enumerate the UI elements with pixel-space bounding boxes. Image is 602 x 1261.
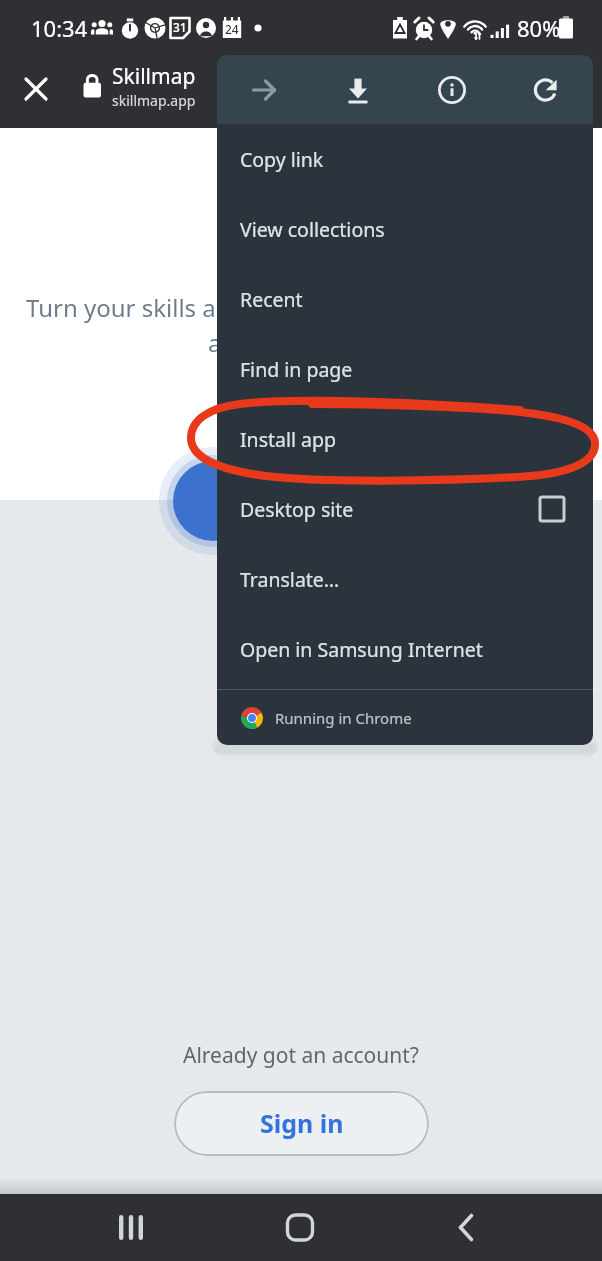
staticText: View collections	[240, 216, 385, 243]
button[interactable]: Install app	[217, 404, 593, 474]
staticText: Translate…	[240, 566, 340, 593]
button[interactable]: Translate…	[217, 544, 593, 614]
button[interactable]: Page info	[405, 55, 499, 124]
button[interactable]: Copy link	[217, 124, 593, 194]
staticText: Open in Samsung Internet	[240, 636, 483, 663]
button[interactable]: View collections	[217, 194, 593, 264]
staticText: a map	[208, 326, 408, 359]
button[interactable]: Reload	[499, 55, 593, 124]
button[interactable]: Home	[266, 1194, 334, 1261]
staticText: Sign in	[260, 1106, 344, 1140]
staticText: Turn your skills and interests	[26, 291, 586, 324]
button[interactable]: Sign in	[174, 1091, 429, 1156]
button[interactable]: Running in Chrome	[217, 690, 593, 745]
button[interactable]: Recent	[217, 264, 593, 334]
staticText: Skillmap	[112, 62, 196, 91]
button[interactable]: Forward	[217, 55, 311, 124]
button[interactable]: Close	[14, 67, 58, 111]
button[interactable]: Download	[311, 55, 405, 124]
staticText: Copy link	[240, 146, 324, 173]
button[interactable]: Recent apps	[97, 1194, 165, 1261]
staticText: 10:34	[31, 13, 88, 43]
button[interactable]: Open in Samsung Internet	[217, 614, 593, 684]
staticText: Desktop site	[240, 496, 354, 523]
staticText: skillmap.app	[112, 91, 196, 110]
staticText: 24	[225, 21, 239, 37]
staticText: 31	[173, 19, 187, 35]
staticText: 80%	[517, 13, 561, 43]
staticText: Already got an account?	[183, 1041, 419, 1070]
button[interactable]: Desktop site	[217, 474, 593, 544]
staticText: Find in page	[240, 356, 353, 383]
button[interactable]: Back	[432, 1194, 500, 1261]
staticText: Install app	[240, 426, 337, 453]
button[interactable]: Find in page	[217, 334, 593, 404]
staticText: Running in Chrome	[275, 708, 412, 728]
staticText: Recent	[240, 286, 303, 313]
